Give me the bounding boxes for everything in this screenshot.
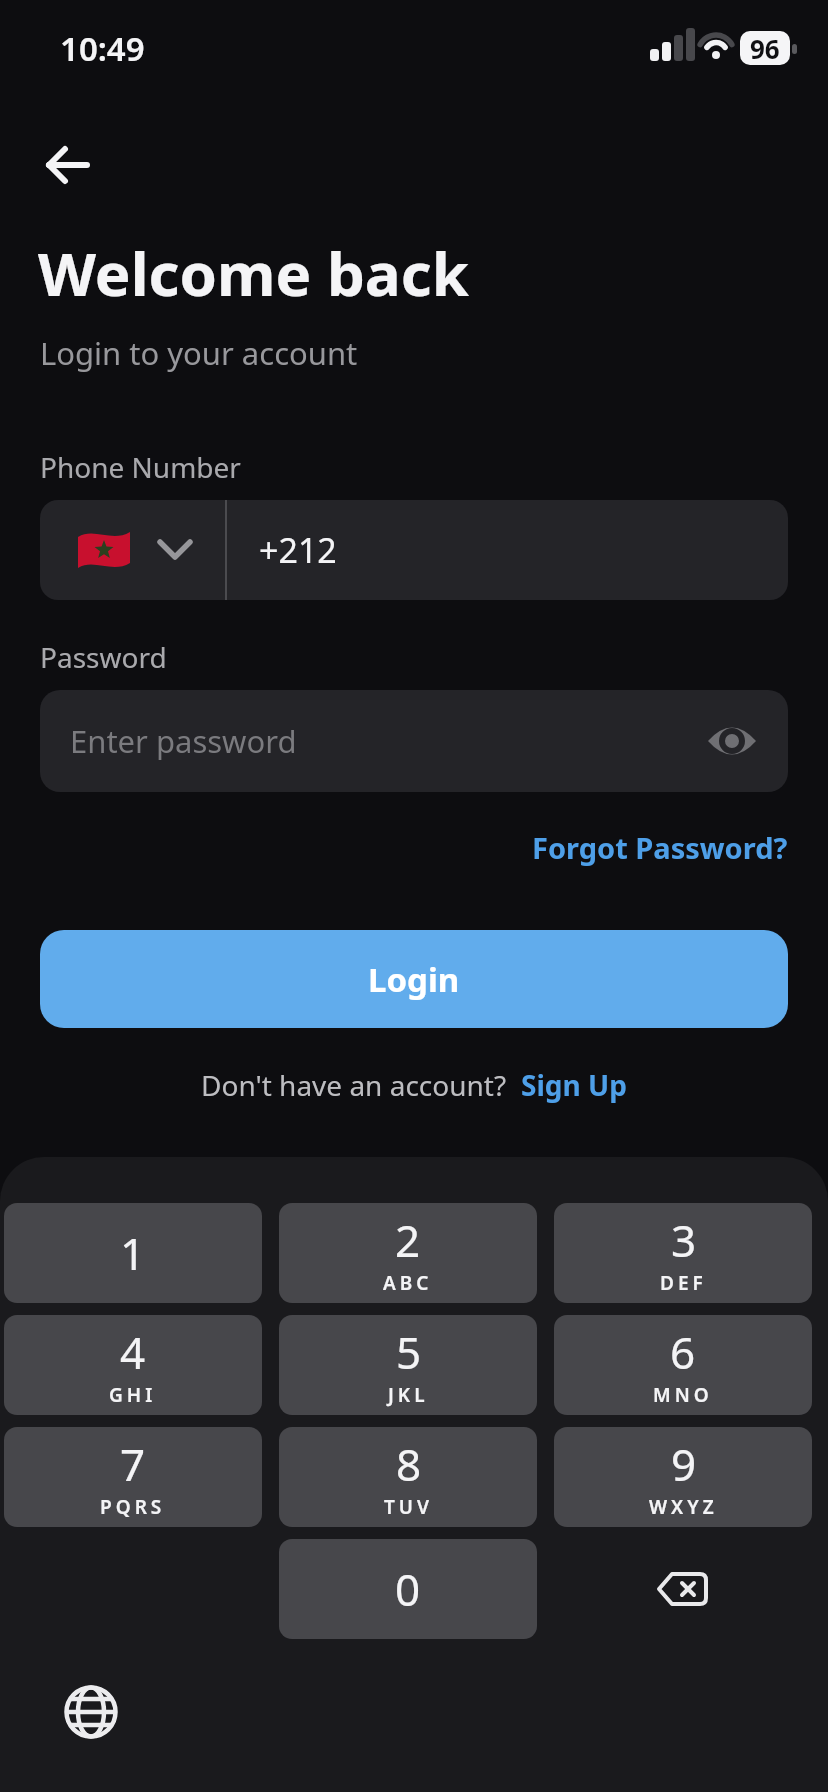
staticText: 6 [670,1322,696,1382]
staticText: Enter password [70,720,297,762]
button[interactable]: 3 [554,1203,812,1303]
button[interactable]: Sign Up [521,1066,627,1104]
staticText: 10:49 [60,26,145,71]
button[interactable]: 0 [279,1539,537,1639]
staticText: Login to your account [40,332,358,374]
staticText: 96 [750,31,780,65]
button[interactable] [38,136,96,194]
staticText: Phone Number [40,448,241,486]
staticText: Password [40,638,167,676]
staticText: DEF [660,1270,707,1296]
staticText: 7 [120,1434,146,1494]
staticText: JKL [388,1382,429,1408]
button[interactable]: 6 [554,1315,812,1415]
staticText: Login [368,957,460,1002]
button[interactable]: Forgot Password? [532,828,788,867]
staticText: 1 [120,1223,146,1283]
staticText: 5 [396,1322,422,1382]
staticText: 4 [120,1322,146,1382]
button[interactable]: 7 [4,1427,262,1527]
staticText: Forgot Password? [532,828,788,867]
staticText: Sign Up [521,1066,627,1104]
button[interactable]: 8 [279,1427,537,1527]
button[interactable] [40,500,225,600]
staticText: MNO [653,1382,713,1408]
staticText: Don't have an account? [201,1066,507,1104]
button[interactable]: 9 [554,1427,812,1527]
button[interactable] [554,1539,812,1639]
staticText: ABC [383,1270,433,1296]
staticText: GHI [109,1382,157,1408]
button[interactable]: Enter password [40,690,788,792]
button[interactable]: +212 [227,500,788,600]
staticText: PQRS [100,1494,166,1520]
staticText: WXYZ [649,1494,718,1520]
staticText: 9 [671,1434,697,1494]
button[interactable]: 2 [279,1203,537,1303]
button[interactable]: Login [40,930,788,1028]
staticText: 3 [671,1210,697,1270]
button[interactable]: 1 [4,1203,262,1303]
staticText: 2 [395,1210,421,1270]
staticText: Welcome back [38,232,469,314]
staticText: 0 [395,1559,421,1619]
staticText: +212 [259,527,337,573]
staticText: 8 [396,1434,422,1494]
button[interactable]: 5 [279,1315,537,1415]
staticText: TUV [384,1494,433,1520]
button[interactable] [60,1681,122,1743]
button[interactable]: 4 [4,1315,262,1415]
